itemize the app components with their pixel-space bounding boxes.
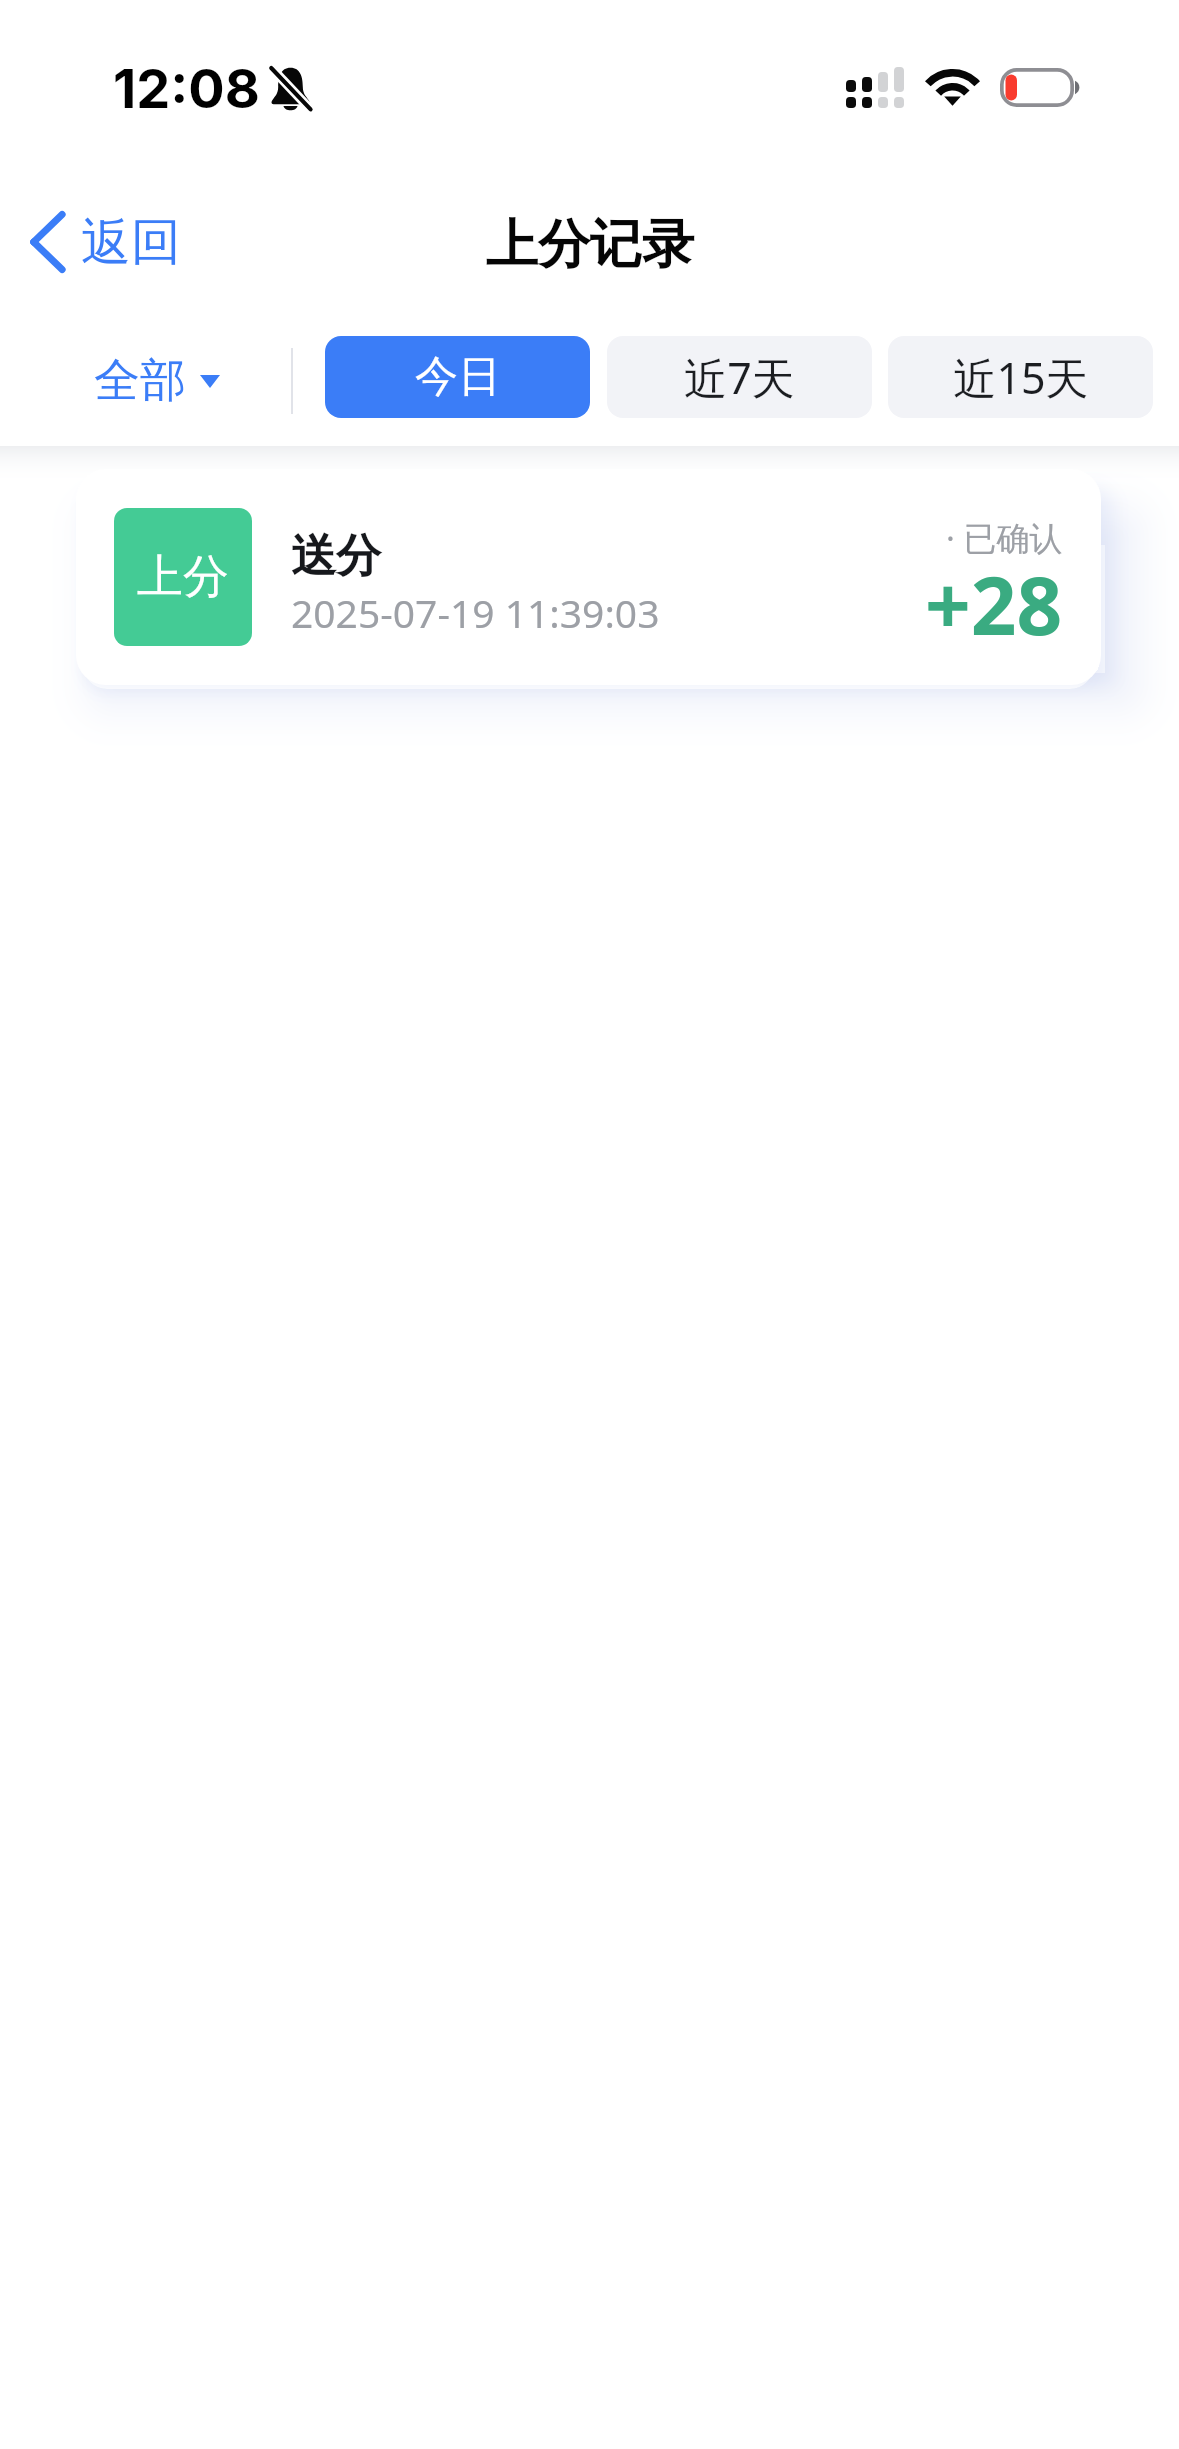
staticText: 上分记录 [486,212,694,278]
staticText: 近15天 [953,348,1089,407]
button[interactable]: 今日 [325,336,590,418]
staticText: 送分 [291,528,381,585]
button[interactable]: 上分 [76,469,1101,685]
staticText: · 已确认 [946,515,1063,560]
button[interactable]: 全部 [70,340,244,422]
button[interactable]: 近7天 [607,336,872,418]
staticText: 上分 [137,548,229,606]
staticText: 2025-07-19 11:39:03 [291,586,660,639]
staticText: +28 [925,549,1063,658]
button[interactable]: 返回 [0,196,205,288]
staticText: 今日 [415,350,501,404]
staticText: 返回 [81,211,181,274]
staticText: 全部 [94,352,186,410]
staticText: 12:08 [113,56,260,121]
button[interactable]: 近15天 [888,336,1153,418]
staticText: 近7天 [684,348,795,407]
